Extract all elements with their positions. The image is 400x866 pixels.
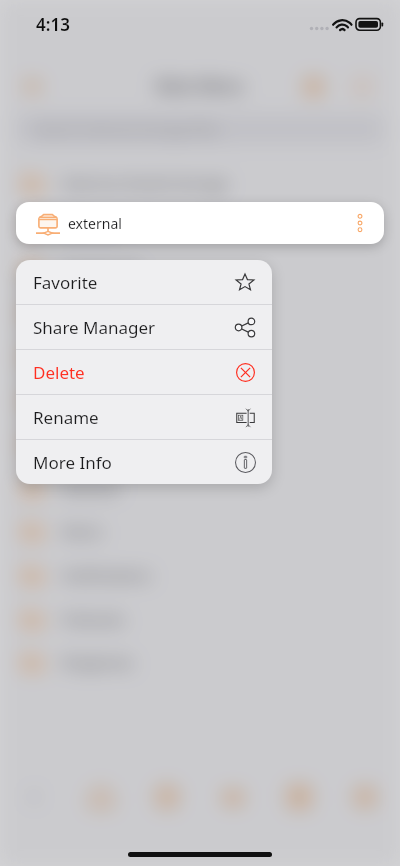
staticText: Android	[62, 478, 119, 498]
staticText: More Info	[33, 451, 112, 474]
button[interactable]: external	[16, 202, 384, 244]
button[interactable]: More options	[349, 212, 371, 234]
staticText: Movies	[62, 434, 112, 454]
staticText: DCIM	[62, 347, 102, 367]
staticText: Pictures	[62, 303, 119, 323]
staticText: Delete	[33, 361, 85, 384]
button[interactable]: Favorite	[16, 260, 272, 304]
staticText: Favorite	[33, 271, 98, 294]
staticText: Share Manager	[33, 316, 156, 339]
staticText: external	[68, 214, 122, 233]
button[interactable]: Delete	[16, 350, 272, 394]
staticText: Main Menu	[156, 75, 244, 97]
button[interactable]: Rename	[16, 395, 272, 439]
staticText: Downloads	[62, 260, 141, 280]
staticText: 4:13	[36, 13, 70, 36]
button[interactable]: More Info	[16, 440, 272, 484]
staticText: Rename	[33, 406, 99, 429]
button[interactable]: Share Manager	[16, 305, 272, 349]
staticText: external	[62, 216, 120, 236]
staticText: Documents	[62, 391, 143, 411]
